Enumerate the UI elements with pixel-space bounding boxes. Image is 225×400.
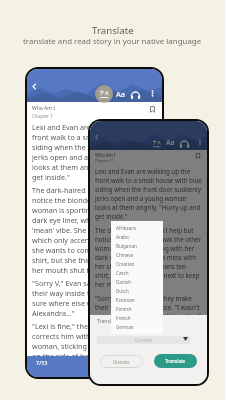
button[interactable]: Dismiss <box>100 355 143 368</box>
button[interactable]: Translate <box>154 354 197 368</box>
button[interactable]: French <box>116 313 163 322</box>
button[interactable]: Back <box>29 81 40 92</box>
staticText: Chapter 7 <box>95 158 114 163</box>
button[interactable]: Estonian <box>116 295 163 304</box>
button[interactable]: Afrikaans <box>116 223 163 232</box>
staticText: Afrikaans <box>116 225 137 231</box>
staticText: Croatian <box>116 261 135 267</box>
staticText: Translate <box>92 24 134 37</box>
button[interactable]: Arabic <box>116 232 163 241</box>
staticText: Bulgarian <box>116 243 137 249</box>
staticText: Who Am I <box>32 105 55 112</box>
staticText: Translate <box>165 358 186 364</box>
staticText: Czech <box>116 270 129 276</box>
staticText: Finnish <box>116 306 132 312</box>
staticText: The dark-haired girl can't help but noti… <box>32 185 157 275</box>
button[interactable]: Translate <box>95 85 113 103</box>
button[interactable]: More options <box>148 89 157 98</box>
staticText: Translate <box>97 318 119 325</box>
staticText: The dark-haired girl can't help but noti… <box>95 226 202 289</box>
button[interactable]: German <box>97 336 190 344</box>
staticText: translate and read story in your native … <box>23 36 202 47</box>
staticText: Dismiss <box>113 359 130 365</box>
staticText: German <box>116 324 134 330</box>
button[interactable]: Czech <box>116 268 163 277</box>
button[interactable]: Bulgarian <box>116 241 163 250</box>
staticText: German <box>135 337 153 343</box>
staticText: Dutch <box>116 288 129 294</box>
button[interactable]: Chinese <box>116 250 163 259</box>
button[interactable]: Dutch <box>116 286 163 295</box>
staticText: Chapter 7 <box>32 113 53 119</box>
staticText: Aa <box>166 138 175 148</box>
button[interactable]: Finnish <box>116 304 163 313</box>
staticText: Chinese <box>116 252 134 258</box>
staticText: Estonian <box>116 297 135 303</box>
button[interactable]: Bookmark <box>148 105 157 114</box>
button[interactable]: Listen <box>130 89 141 100</box>
staticText: Who Am I <box>95 152 116 158</box>
staticText: French <box>116 315 131 321</box>
button[interactable]: German <box>116 322 163 331</box>
staticText: The woman nods but doesn't smile very fr… <box>32 364 157 377</box>
staticText: Danish <box>116 279 131 285</box>
staticText: Aa <box>116 89 125 99</box>
staticText: "Lexi is fine," the dark-haired girl cor… <box>32 321 157 361</box>
button[interactable]: Croatian <box>116 259 163 268</box>
staticText: "Sorry V," Evan says as they make their … <box>95 294 202 321</box>
staticText: Arabic <box>116 234 130 240</box>
staticText: "Sorry V," Evan says as they make their … <box>32 278 157 318</box>
button[interactable]: Danish <box>116 277 163 286</box>
staticText: 7/13 <box>36 359 48 366</box>
staticText: "Lexi is fine," the dark-haired girl cor… <box>95 326 202 344</box>
staticText: Lexi and Evan are walking up the front w… <box>32 122 157 182</box>
button[interactable]: Text size <box>114 89 126 99</box>
staticText: Lexi and Evan are walking up the front w… <box>95 167 202 221</box>
